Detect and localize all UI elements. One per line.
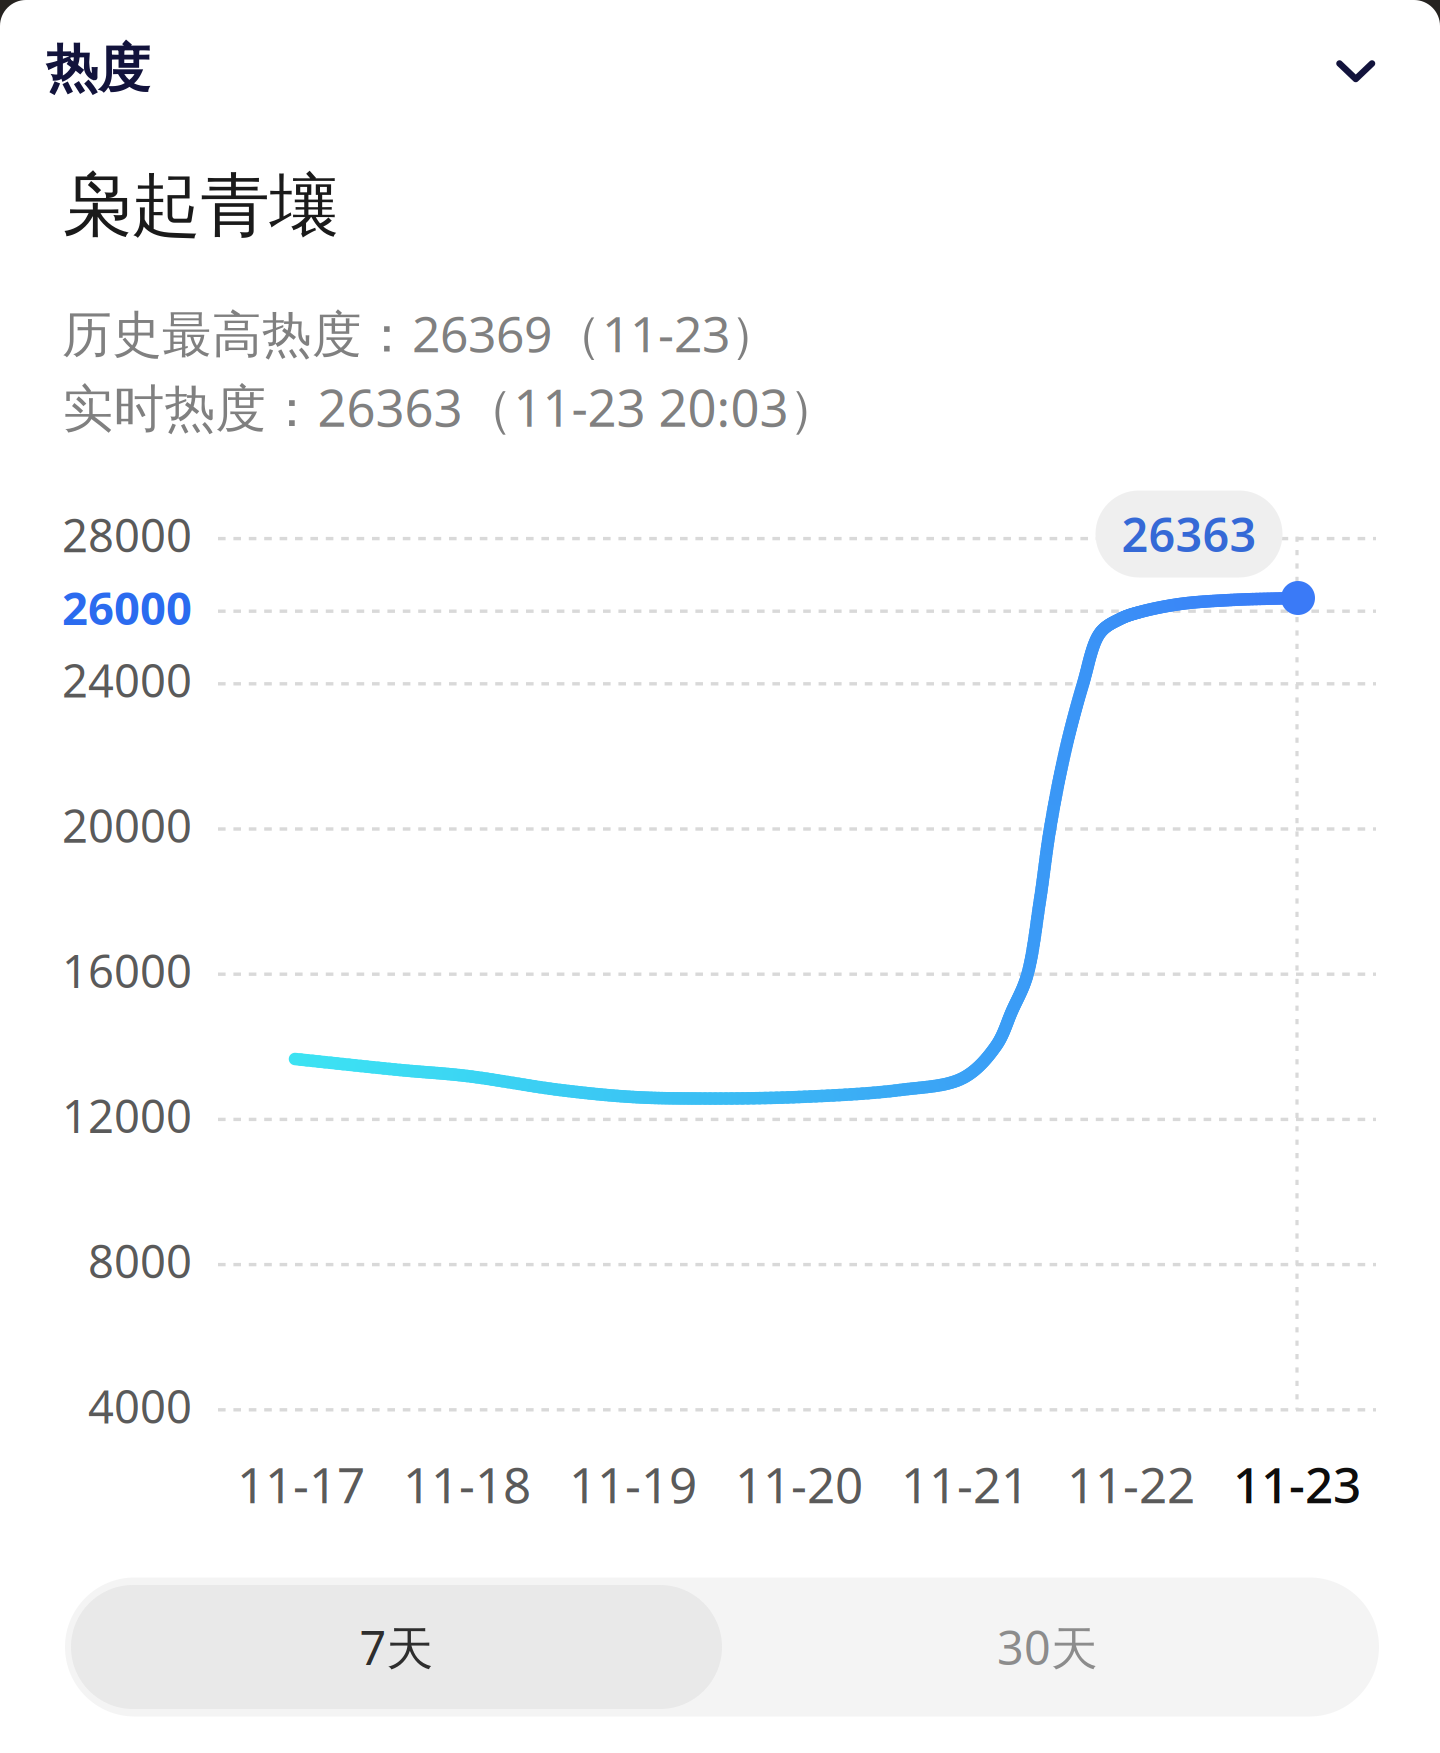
staticText: 16000 — [62, 940, 192, 1000]
staticText: 枭起青壤 — [62, 162, 338, 250]
staticText: 实时热度：26363（11-23 20:03） — [62, 372, 839, 442]
staticText: 11-17 — [237, 1451, 365, 1517]
staticText: 11-22 — [1067, 1451, 1195, 1517]
staticText: 28000 — [62, 505, 192, 565]
staticText: 历史最高热度：26369（11-23） — [62, 299, 780, 367]
staticText: 11-21 — [901, 1451, 1029, 1517]
button[interactable]: 7天 — [71, 1585, 722, 1709]
staticText: 7天 — [359, 1616, 433, 1678]
staticText: 11-20 — [735, 1451, 863, 1517]
staticText: 11-19 — [569, 1451, 697, 1517]
staticText: 26000 — [62, 577, 192, 637]
staticText: 12000 — [62, 1085, 192, 1146]
staticText: 30天 — [997, 1616, 1098, 1678]
staticText: 11-18 — [403, 1451, 531, 1517]
staticText: 8000 — [88, 1231, 192, 1291]
button[interactable]: Collapse — [1313, 28, 1399, 114]
staticText: 热度 — [46, 37, 150, 101]
button[interactable]: 30天 — [722, 1585, 1373, 1709]
staticText: 26363 — [1121, 503, 1256, 565]
staticText: 24000 — [62, 650, 192, 710]
staticText: 4000 — [88, 1376, 192, 1436]
staticText: 11-23 — [1233, 1451, 1361, 1517]
staticText: 20000 — [62, 795, 192, 855]
